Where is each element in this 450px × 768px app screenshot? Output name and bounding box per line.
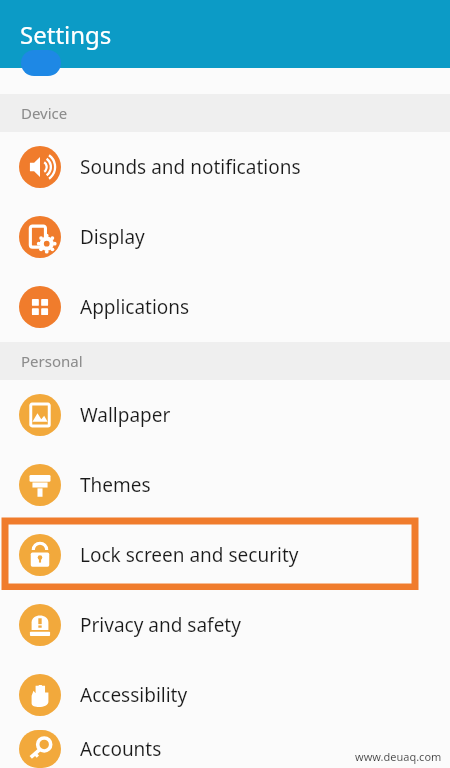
staticText: Accounts [80, 736, 162, 762]
staticText: Sounds and notifications [80, 154, 301, 180]
staticText: Privacy and safety [80, 612, 241, 638]
button[interactable]: Applications [0, 272, 450, 342]
button[interactable]: Accounts [0, 730, 450, 768]
staticText: Personal [21, 351, 83, 371]
button[interactable]: Lock screen and security [0, 520, 450, 590]
staticText: Lock screen and security [80, 542, 299, 568]
button[interactable]: Wallpaper [0, 380, 450, 450]
staticText: Wallpaper [80, 402, 171, 428]
button[interactable]: Themes [0, 450, 450, 520]
button[interactable]: Accessibility [0, 660, 450, 730]
button[interactable]: Sounds and notifications [0, 132, 450, 202]
staticText: Themes [80, 472, 151, 498]
button[interactable]: Privacy and safety [0, 590, 450, 660]
staticText: Settings [20, 18, 112, 51]
staticText: Accessibility [80, 682, 188, 708]
staticText: Device [21, 103, 68, 123]
staticText: Display [80, 224, 145, 250]
button[interactable]: Display [0, 202, 450, 272]
staticText: www.deuaq.com [355, 749, 442, 764]
staticText: Applications [80, 294, 190, 320]
